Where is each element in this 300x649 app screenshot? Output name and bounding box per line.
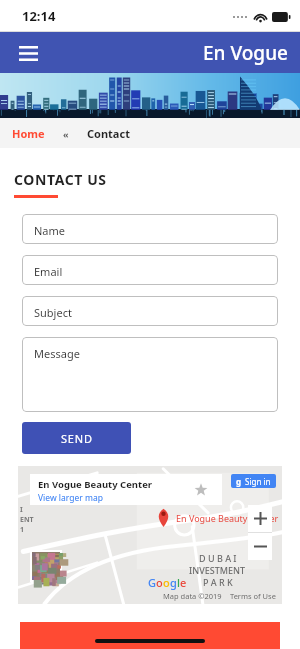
staticText: 1 (20, 525, 25, 535)
staticText: INVESTMENT (189, 564, 246, 576)
staticText: l (177, 575, 180, 590)
staticText: G (148, 575, 156, 590)
staticText: « (63, 128, 69, 140)
button[interactable]: D U B A I (18, 466, 282, 604)
staticText: En Vogue Beauty Center (176, 512, 279, 524)
staticText: o (163, 575, 170, 590)
staticText: Name (34, 223, 66, 238)
button[interactable]: Email (22, 255, 278, 285)
button[interactable]: En Vogue Beauty Center (30, 474, 222, 505)
button[interactable]: Terms of Use (230, 591, 276, 601)
button[interactable]: Open navigation menu (14, 42, 42, 64)
staticText: g (236, 476, 242, 487)
button[interactable]: En Vogue (203, 40, 288, 66)
staticText: o (156, 575, 163, 590)
button[interactable]: Zoom in (248, 505, 272, 532)
button[interactable]: Name (22, 214, 278, 244)
button[interactable] (32, 552, 60, 580)
staticText: En Vogue Beauty Center (38, 478, 153, 491)
button[interactable]: Subject (22, 296, 278, 326)
staticText: I (20, 505, 23, 515)
staticText: ENT (20, 515, 34, 525)
staticText: Contact (87, 126, 130, 141)
button[interactable]: Zoom out (248, 533, 272, 560)
button[interactable]: SEND (22, 422, 131, 454)
staticText: Subject (34, 305, 72, 320)
staticText: Email (34, 264, 63, 279)
staticText: Sign in (245, 476, 271, 487)
staticText: e (180, 575, 187, 590)
button[interactable]: View larger map (38, 492, 103, 504)
staticText: CONTACT US (14, 170, 107, 189)
button[interactable]: Message (22, 337, 278, 412)
staticText: P A R K (203, 576, 233, 588)
button[interactable]: Save place (194, 483, 208, 497)
staticText: D U B A I (199, 552, 237, 564)
staticText: 12:14 (22, 7, 56, 25)
staticText: g (170, 575, 177, 590)
button[interactable]: Home (12, 126, 45, 141)
staticText: Message (34, 346, 80, 361)
staticText: Map data ©2019 (163, 591, 222, 601)
button[interactable]: g (231, 474, 276, 488)
staticText: SEND (61, 431, 93, 446)
